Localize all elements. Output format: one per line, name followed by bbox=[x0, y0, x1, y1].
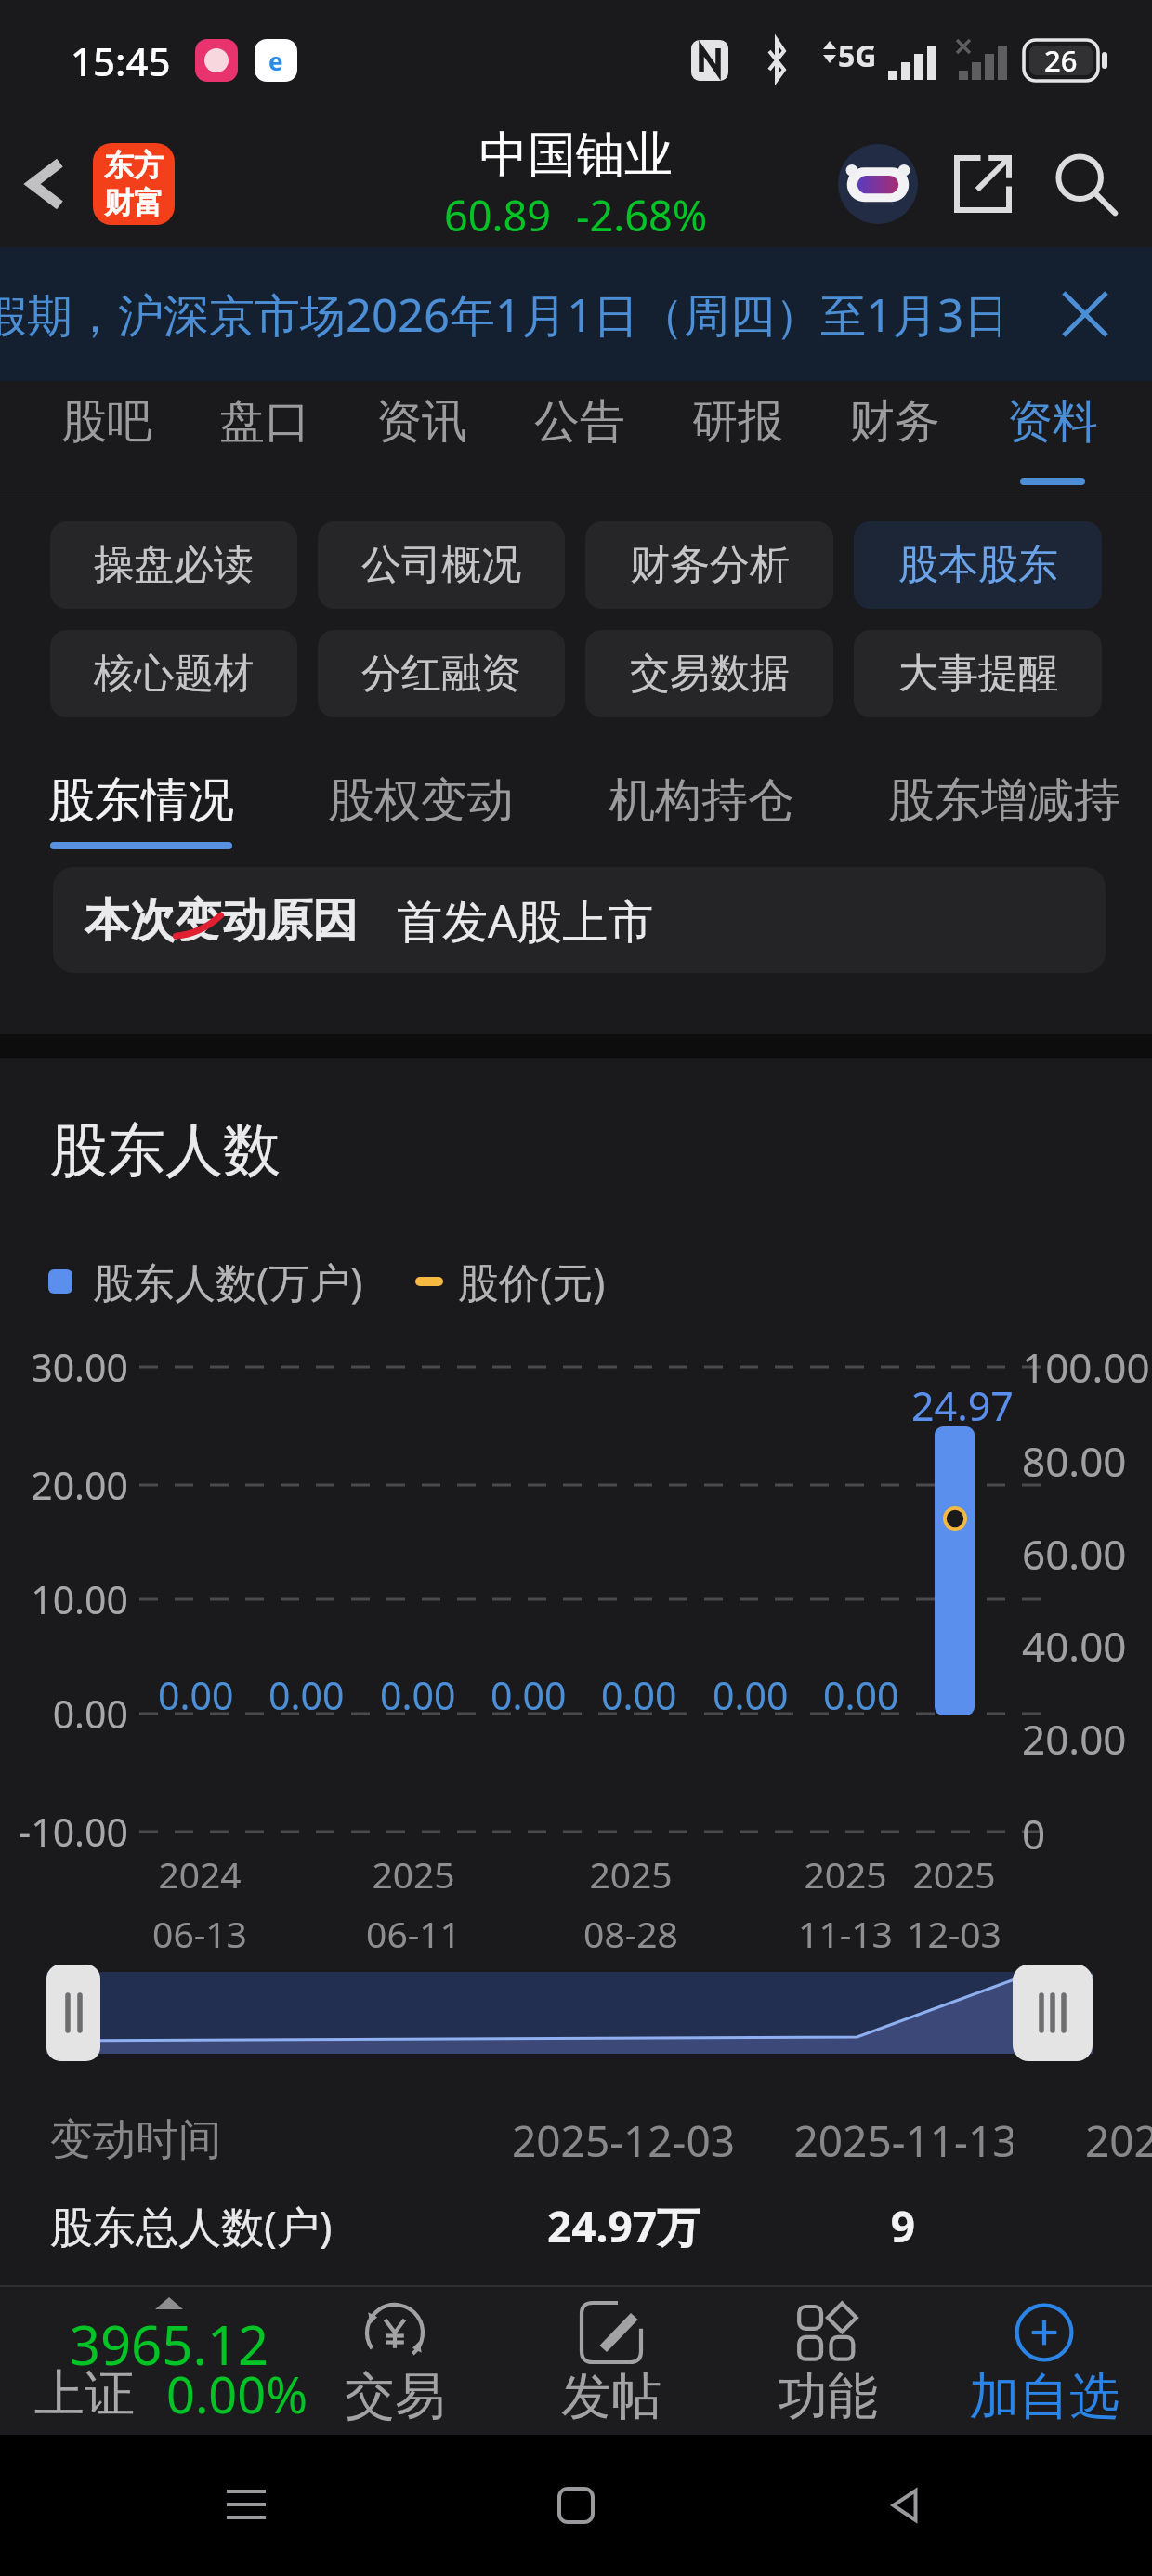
staticText: 加自选 bbox=[969, 2365, 1119, 2428]
staticText: 资料 bbox=[1007, 393, 1098, 451]
staticText: 交易数据 bbox=[630, 649, 790, 699]
staticText: 0 bbox=[1022, 1806, 1046, 1860]
staticText: 首发A股上市 bbox=[397, 889, 654, 952]
button[interactable]: 假期，沪深京市场2026年1月1日（周四）至1月3日 bbox=[0, 247, 1152, 381]
staticText: 26 bbox=[1044, 41, 1078, 80]
button[interactable]: 发帖 bbox=[503, 2287, 719, 2435]
staticText: 3965.12 bbox=[26, 2307, 312, 2381]
staticText: 发帖 bbox=[561, 2365, 661, 2428]
staticText: 盘口 bbox=[219, 393, 310, 451]
staticText: 0.00 bbox=[713, 1669, 789, 1721]
button[interactable]: Back bbox=[0, 121, 93, 247]
staticText: 0.00 bbox=[268, 1669, 345, 1721]
staticText: 研报 bbox=[692, 393, 783, 451]
button[interactable]: 操盘必读 bbox=[50, 521, 297, 609]
button[interactable]: 股东情况 bbox=[48, 740, 234, 867]
staticText: e bbox=[268, 45, 283, 77]
staticText: 100.00 bbox=[1022, 1339, 1150, 1393]
staticText: -10.00 bbox=[0, 1806, 128, 1858]
staticText: 24.97 bbox=[911, 1378, 1014, 1433]
staticText: 60.89 bbox=[444, 187, 552, 243]
staticText: 0.00 bbox=[823, 1669, 899, 1721]
staticText: 2025 bbox=[570, 1849, 691, 1899]
staticText: 财务 bbox=[849, 393, 940, 451]
button[interactable]: 分红融资 bbox=[318, 630, 565, 717]
staticText: 财务分析 bbox=[630, 540, 790, 590]
staticText: 10.00 bbox=[0, 1573, 128, 1625]
staticText: 中国铀业 bbox=[479, 125, 673, 186]
staticText: 公告 bbox=[534, 393, 625, 451]
button[interactable]: 财务 bbox=[849, 381, 940, 493]
staticText: 上证 bbox=[34, 2362, 135, 2425]
staticText: 20.00 bbox=[1022, 1711, 1127, 1765]
staticText: 变动时间 bbox=[50, 2113, 221, 2167]
button[interactable]: Home bbox=[543, 2473, 609, 2538]
staticText: 资讯 bbox=[376, 393, 467, 451]
button[interactable]: 机构持仓 bbox=[609, 740, 794, 867]
button[interactable]: 股本股东 bbox=[854, 521, 1102, 609]
staticText: 股东人数(万户) bbox=[93, 1254, 363, 1309]
button[interactable]: 大事提醒 bbox=[854, 630, 1102, 717]
staticText: 08-28 bbox=[570, 1909, 691, 1958]
staticText: 80.00 bbox=[1022, 1433, 1127, 1487]
staticText: 股吧 bbox=[61, 393, 152, 451]
button[interactable]: 加自选 bbox=[936, 2287, 1152, 2435]
button[interactable]: 股吧 bbox=[61, 381, 152, 493]
button[interactable]: 东方 bbox=[93, 143, 175, 225]
staticText: 分红融资 bbox=[361, 649, 521, 699]
staticText: 假期，沪深京市场2026年1月1日（周四）至1月3日 bbox=[0, 283, 1000, 346]
button[interactable]: 3965.12 bbox=[0, 2287, 286, 2435]
staticText: 股东总人数(户) bbox=[50, 2197, 333, 2255]
staticText: 0.00 bbox=[601, 1669, 677, 1721]
staticText: 0.00 bbox=[158, 1669, 234, 1721]
staticText: 0.00 bbox=[380, 1669, 456, 1721]
button[interactable]: Range start bbox=[46, 1965, 100, 2061]
button[interactable]: AI assistant bbox=[838, 144, 918, 224]
staticText: 财富 bbox=[104, 184, 164, 221]
staticText: 20.00 bbox=[0, 1459, 128, 1511]
staticText: 0.00 bbox=[0, 1688, 128, 1740]
button[interactable]: 股权变动 bbox=[328, 740, 514, 867]
staticText: 0.00 bbox=[491, 1669, 567, 1721]
button[interactable]: Close banner bbox=[1018, 247, 1152, 381]
staticText: 30.00 bbox=[0, 1341, 128, 1393]
staticText: 2024 bbox=[139, 1849, 260, 1899]
button[interactable]: 本次变动原因 bbox=[53, 867, 1106, 973]
staticText: 0.00% bbox=[166, 2359, 308, 2428]
button[interactable]: 交易数据 bbox=[585, 630, 833, 717]
button[interactable]: 功能 bbox=[719, 2287, 936, 2435]
staticText: 15:45 bbox=[71, 34, 171, 87]
button[interactable]: 交易 bbox=[286, 2287, 503, 2435]
button[interactable]: 资讯 bbox=[376, 381, 467, 493]
staticText: 5G bbox=[838, 35, 877, 76]
button[interactable]: 公告 bbox=[534, 381, 625, 493]
button[interactable]: 盘口 bbox=[219, 381, 310, 493]
button[interactable]: 资料 bbox=[1007, 381, 1098, 493]
staticText: 股东增减持 bbox=[888, 771, 1120, 830]
staticText: 机构持仓 bbox=[609, 771, 794, 830]
staticText: 2025 bbox=[785, 1849, 906, 1899]
staticText: 核心题材 bbox=[94, 649, 254, 699]
staticText: 东方 bbox=[104, 147, 164, 184]
button[interactable]: 研报 bbox=[692, 381, 783, 493]
staticText: 股东情况 bbox=[48, 771, 234, 830]
button[interactable]: Recents bbox=[214, 2473, 279, 2538]
button[interactable]: 公司概况 bbox=[318, 521, 565, 609]
button[interactable]: 财务分析 bbox=[585, 521, 833, 609]
staticText: 股本股东 bbox=[898, 540, 1058, 590]
button[interactable]: 股东增减持 bbox=[888, 740, 1120, 867]
staticText: 12-03 bbox=[894, 1909, 1015, 1958]
staticText: 2025 bbox=[353, 1849, 474, 1899]
button[interactable]: Range end bbox=[1013, 1965, 1093, 2061]
staticText: 股权变动 bbox=[328, 771, 514, 830]
staticText: 9 bbox=[793, 2197, 1013, 2255]
button[interactable]: Search bbox=[1044, 142, 1128, 226]
button[interactable]: Share bbox=[946, 147, 1020, 221]
staticText: 2025-11-13 bbox=[793, 2111, 1013, 2170]
button[interactable]: Back bbox=[873, 2473, 938, 2538]
button[interactable]: 核心题材 bbox=[50, 630, 297, 717]
button[interactable]: 中国铀业 bbox=[444, 125, 708, 243]
staticText: 11-13 bbox=[785, 1909, 906, 1958]
staticText: 股价(元) bbox=[458, 1254, 606, 1309]
staticText: 40.00 bbox=[1022, 1618, 1127, 1672]
